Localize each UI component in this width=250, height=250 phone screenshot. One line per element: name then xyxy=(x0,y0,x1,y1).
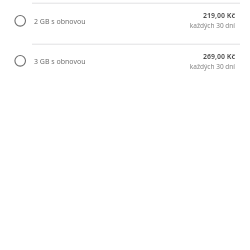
staticText: každých 30 dní xyxy=(189,62,235,71)
staticText: 219,00 Kč xyxy=(202,11,235,21)
other: Vybrat 2 GB s obnovou xyxy=(14,14,28,28)
other: Vybrat 3 GB s obnovou xyxy=(14,54,28,68)
staticText: každých 30 dní xyxy=(189,21,235,30)
staticText: 2 GB s obnovou xyxy=(34,17,86,27)
staticText: 3 GB s obnovou xyxy=(34,57,86,67)
staticText: 269,00 Kč xyxy=(202,52,235,62)
button[interactable]: Vybrat 2 GB s obnovou xyxy=(0,4,250,43)
button[interactable]: Vybrat 3 GB s obnovou xyxy=(0,45,250,85)
